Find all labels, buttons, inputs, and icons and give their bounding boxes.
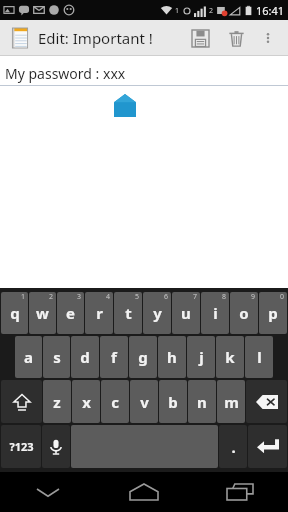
- button[interactable]: Home: [96, 472, 192, 512]
- staticText: a: [24, 347, 33, 367]
- staticText: j: [199, 347, 204, 367]
- button[interactable]: k: [216, 336, 244, 378]
- button[interactable]: Delete: [246, 380, 287, 423]
- button[interactable]: d: [71, 336, 99, 378]
- button[interactable]: f: [100, 336, 128, 378]
- button[interactable]: n: [188, 380, 216, 423]
- button[interactable]: Delete: [218, 20, 254, 56]
- staticText: g: [138, 347, 148, 367]
- button[interactable]: p: [259, 292, 287, 334]
- button[interactable]: g: [129, 336, 157, 378]
- staticText: p: [268, 303, 278, 323]
- staticText: e: [66, 303, 75, 323]
- button[interactable]: r: [85, 292, 113, 334]
- button[interactable]: w: [29, 292, 56, 334]
- staticText: 5: [135, 292, 140, 302]
- button[interactable]: j: [187, 336, 215, 378]
- staticText: d: [80, 347, 90, 367]
- staticText: 7: [193, 292, 198, 302]
- staticText: 3: [77, 292, 82, 302]
- button[interactable]: o: [230, 292, 258, 334]
- button[interactable]: h: [158, 336, 186, 378]
- staticText: r: [96, 303, 103, 323]
- button[interactable]: b: [159, 380, 187, 423]
- staticText: Edit: Important !: [38, 28, 153, 48]
- staticText: n: [197, 392, 207, 412]
- button[interactable]: ?123: [1, 425, 41, 468]
- button[interactable]: v: [130, 380, 158, 423]
- staticText: q: [10, 303, 20, 323]
- button[interactable]: u: [172, 292, 200, 334]
- staticText: v: [140, 392, 149, 412]
- button[interactable]: Recent apps: [192, 472, 288, 512]
- button[interactable]: Shift: [1, 380, 42, 423]
- button[interactable]: l: [245, 336, 273, 378]
- button[interactable]: c: [101, 380, 129, 423]
- staticText: i: [213, 303, 218, 323]
- staticText: w: [36, 303, 49, 323]
- staticText: 9: [251, 292, 256, 302]
- staticText: s: [53, 347, 61, 367]
- button[interactable]: t: [114, 292, 142, 334]
- button[interactable]: .: [219, 425, 247, 468]
- button[interactable]: y: [143, 292, 171, 334]
- staticText: .: [231, 437, 236, 457]
- button[interactable]: More options: [254, 24, 282, 52]
- staticText: 8: [222, 292, 227, 302]
- button[interactable]: m: [217, 380, 245, 423]
- staticText: b: [168, 392, 178, 412]
- button[interactable]: Enter: [248, 425, 287, 468]
- staticText: o: [239, 303, 249, 323]
- button[interactable]: e: [57, 292, 84, 334]
- staticText: y: [153, 303, 162, 323]
- button[interactable]: s: [43, 336, 70, 378]
- button[interactable]: i: [201, 292, 229, 334]
- staticText: x: [82, 392, 91, 412]
- staticText: 1: [175, 6, 180, 16]
- staticText: t: [125, 303, 132, 323]
- staticText: l: [257, 347, 262, 367]
- button[interactable]: My password : xxx: [5, 64, 126, 83]
- button[interactable]: Voice input: [42, 425, 70, 468]
- staticText: h: [167, 347, 177, 367]
- button[interactable]: z: [43, 380, 71, 423]
- button[interactable]: q: [1, 292, 28, 334]
- staticText: 2: [209, 6, 214, 16]
- staticText: 0: [280, 292, 285, 302]
- staticText: 4: [106, 292, 111, 302]
- staticText: m: [224, 392, 239, 412]
- staticText: u: [181, 303, 191, 323]
- staticText: 2: [49, 292, 54, 302]
- staticText: ?123: [9, 439, 34, 454]
- button[interactable]: a: [15, 336, 42, 378]
- staticText: f: [111, 347, 117, 367]
- staticText: c: [111, 392, 119, 412]
- staticText: 6: [164, 292, 169, 302]
- staticText: k: [225, 347, 235, 367]
- button[interactable]: x: [72, 380, 100, 423]
- button[interactable]: Save: [182, 20, 218, 56]
- staticText: z: [53, 392, 61, 412]
- staticText: 16:41: [256, 3, 285, 18]
- staticText: 1: [21, 292, 26, 302]
- button[interactable]: Hide keyboard: [0, 472, 96, 512]
